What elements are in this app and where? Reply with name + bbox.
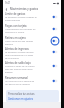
button[interactable]: Resumen semanal [50,76,60,86]
staticText: Cuando el saldo de la cuenta [5,65,35,68]
staticText: efectivo [5,43,14,46]
staticText: Te avisamos cuando recibas [5,51,34,54]
staticText: Un informe con el detalle de [5,80,35,83]
staticText: Movimientos y gastos [10,7,38,11]
staticText: una transferencia o el pago [5,54,34,57]
button[interactable]: Resumen semanal [3,76,61,86]
button[interactable]: Limite de gastos [3,12,61,24]
staticText: 9:41 [5,1,11,5]
staticText: Personaliza tus avisos [8,92,35,96]
staticText: Avisos cada vez que saques [5,40,34,43]
button[interactable]: Retiros en cajero [3,36,61,47]
staticText: comercios y online [5,31,25,34]
staticText: Notificaciones de compras en [5,28,36,31]
button[interactable]: Alertas de saldo bajo [50,61,60,71]
button[interactable]: Limite de gastos [50,12,60,22]
button[interactable]: Alertas de saldo bajo [3,61,61,76]
staticText: Resumen semanal [5,76,28,80]
button[interactable]: Back [4,7,9,12]
button[interactable]: Retiros en cajero [50,36,60,46]
button[interactable]: Alertas de ingresos [3,47,61,61]
staticText: de tu nomina [5,57,19,60]
staticText: limite mensual [5,19,21,22]
staticText: tus gastos de la semana [5,83,30,86]
staticText: Te avisamos cuando superes el [5,16,37,19]
button[interactable]: Alertas de ingresos [50,47,60,57]
staticText: Alertas de saldo bajo [5,61,31,65]
staticText: Limite de gastos [5,12,26,16]
button[interactable]: Pagos con tarjeta [50,24,60,34]
button[interactable]: Personaliza tus avisos [6,90,59,102]
staticText: baje del minimo que hayas [5,68,33,71]
button[interactable]: Pagos con tarjeta [3,24,61,36]
staticText: elegido [5,71,13,74]
staticText: Retiros en cajero [5,36,26,40]
staticText: Pagos con tarjeta [5,24,27,28]
staticText: Alertas de ingresos [5,47,29,51]
staticText: Gestionar en ajustes [8,97,33,101]
